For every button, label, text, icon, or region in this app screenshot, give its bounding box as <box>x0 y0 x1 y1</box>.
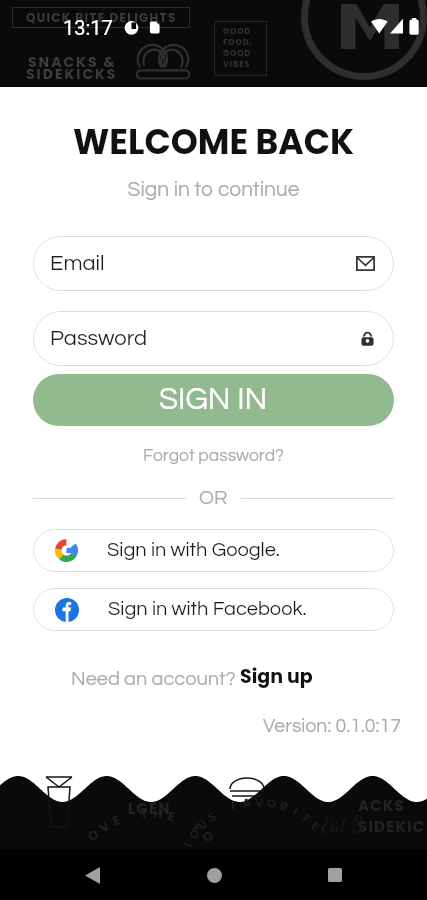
staticText: Need an account? <box>71 669 240 690</box>
staticText: SIDEKICKS <box>26 64 118 84</box>
button[interactable]: Email <box>33 236 394 291</box>
staticText: Email <box>50 252 356 275</box>
staticText: ACKS <box>358 795 405 816</box>
button[interactable]: Forgot password? <box>0 447 427 465</box>
staticText: QUICK BITE DELIGHTS <box>26 9 177 26</box>
button[interactable]: Back <box>68 851 116 899</box>
button[interactable]: SIGN IN <box>33 374 394 426</box>
button[interactable]: Sign up <box>240 663 313 690</box>
button[interactable]: Home <box>190 851 238 899</box>
button[interactable]: Recent apps <box>311 851 359 899</box>
staticText: SIGN IN <box>159 384 268 416</box>
staticText: WELCOME BACK <box>0 118 427 166</box>
staticText: Password <box>50 327 360 350</box>
button[interactable]: Sign in with Google. <box>33 529 394 572</box>
staticText: Eat 8 <box>322 812 364 837</box>
staticText: Version: 0.1.0:17 <box>0 716 401 736</box>
staticText: GOOD <box>223 48 252 59</box>
staticText: Sign in with Facebook. <box>108 599 307 620</box>
staticText: FOOD, <box>223 37 253 48</box>
staticText: OR <box>199 488 228 509</box>
staticText: 13:17 <box>63 16 113 39</box>
staticText: Sign in to continue <box>0 179 427 201</box>
staticText: Sign in with Google. <box>107 540 280 561</box>
button[interactable]: Sign in with Facebook. <box>33 588 394 631</box>
staticText: GOOD <box>223 26 252 37</box>
staticText: SIDEKIC <box>358 816 426 837</box>
button[interactable]: Password <box>33 311 394 366</box>
staticText: SNACKS & <box>28 52 117 72</box>
staticText: LGEN <box>128 798 171 819</box>
staticText: VIBES <box>223 59 251 70</box>
